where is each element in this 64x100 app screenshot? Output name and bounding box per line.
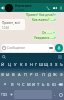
staticText: М xyxy=(27,82,31,87)
button[interactable]: Привет! Как дела? xyxy=(25,12,56,17)
staticText: в сети xyxy=(15,8,24,12)
staticText: А xyxy=(18,72,21,77)
button[interactable]: У xyxy=(12,60,18,69)
staticText: Э xyxy=(60,72,63,77)
staticText: Б xyxy=(47,82,50,87)
button[interactable]: Emoji xyxy=(57,90,64,99)
staticText: Ф xyxy=(1,72,5,77)
staticText: Привет, всё супер! xyxy=(2,21,24,25)
staticText: Д xyxy=(48,72,51,77)
button[interactable]: Увидимся xyxy=(33,35,56,40)
staticText: Как жизнь? xyxy=(32,18,50,22)
button[interactable]: Shift xyxy=(0,79,9,89)
staticText: Е xyxy=(25,62,28,67)
button[interactable]: Н xyxy=(29,60,34,69)
staticText: Ю xyxy=(52,82,56,87)
button[interactable]: Ш xyxy=(39,60,44,69)
staticText: Ь xyxy=(42,82,45,87)
button[interactable]: Б xyxy=(46,79,51,89)
button[interactable]: More options xyxy=(58,3,64,12)
staticText: Г xyxy=(35,62,38,67)
staticText: И xyxy=(32,82,36,87)
button[interactable]: Ц xyxy=(6,60,12,69)
staticText: Ок xyxy=(42,31,47,35)
button[interactable]: Send voice message xyxy=(55,44,63,52)
staticText: 12:0 xyxy=(47,31,52,34)
button[interactable]: Ч xyxy=(15,79,21,89)
staticText: Контакт xyxy=(15,3,32,8)
staticText: Щ xyxy=(44,62,49,67)
button[interactable]: Э xyxy=(58,69,64,79)
button[interactable]: Ъ xyxy=(59,60,64,69)
button[interactable]: Contact photo xyxy=(5,4,13,12)
button[interactable]: Keyboard settings xyxy=(58,55,62,59)
button[interactable]: М xyxy=(26,79,31,89)
button[interactable]: Л xyxy=(40,69,46,79)
button[interactable]: Back xyxy=(0,3,5,12)
button[interactable]: Ю xyxy=(51,79,56,89)
button[interactable]: А xyxy=(16,69,22,79)
staticText: Ъ xyxy=(60,62,63,67)
staticText: ?123 xyxy=(1,93,8,97)
staticText: Привет! Как дела? xyxy=(26,13,54,17)
staticText: 12:0 xyxy=(54,13,55,16)
staticText: Ц xyxy=(8,62,11,67)
button[interactable]: Сообщение xyxy=(1,44,54,52)
button[interactable]: Call xyxy=(44,3,51,12)
staticText: Я xyxy=(11,82,14,87)
button[interactable]: Т xyxy=(36,79,41,89)
staticText: Ш xyxy=(39,62,44,67)
button[interactable]: Р xyxy=(28,69,34,79)
button[interactable]: С xyxy=(21,79,26,89)
button[interactable]: ?123 xyxy=(0,90,9,99)
staticText: Ч xyxy=(17,82,20,87)
button[interactable]: Е xyxy=(24,60,29,69)
button[interactable]: З xyxy=(49,60,54,69)
staticText: Сообщение xyxy=(7,46,26,50)
button[interactable]: Ок xyxy=(41,30,56,35)
button[interactable]: Comma xyxy=(9,90,14,99)
button[interactable]: Ь xyxy=(41,79,46,89)
staticText: У xyxy=(14,62,17,67)
staticText: Х xyxy=(55,62,58,67)
staticText: Т xyxy=(37,82,40,87)
button[interactable]: Г xyxy=(34,60,39,69)
staticText: Ы xyxy=(6,72,10,77)
button[interactable]: И xyxy=(31,79,36,89)
staticText: Ж xyxy=(53,72,57,77)
staticText: О xyxy=(35,72,39,77)
button[interactable]: Как жизнь? xyxy=(31,17,56,22)
button[interactable]: Ы xyxy=(5,69,10,79)
button[interactable]: Video call xyxy=(51,3,58,12)
button[interactable]: О xyxy=(34,69,40,79)
staticText: Н xyxy=(30,62,33,67)
button[interactable]: Ж xyxy=(52,69,58,79)
button[interactable]: Backspace xyxy=(56,79,64,89)
staticText: Л xyxy=(42,72,45,77)
button[interactable]: Ф xyxy=(0,69,5,79)
staticText: Р xyxy=(30,72,33,77)
button[interactable]: Привет, всё супер! xyxy=(0,19,25,30)
staticText: . xyxy=(54,92,56,97)
button[interactable]: Search xyxy=(2,55,6,59)
staticText: З xyxy=(50,62,53,67)
staticText: Й xyxy=(1,62,5,67)
staticText: К xyxy=(20,62,23,67)
staticText: В xyxy=(12,72,15,77)
button[interactable]: Я xyxy=(9,79,15,89)
button[interactable]: Й xyxy=(0,60,6,69)
button[interactable]: Д xyxy=(46,69,52,79)
button[interactable]: В xyxy=(10,69,16,79)
staticText: Увидимся xyxy=(34,36,50,40)
staticText: 12:0 xyxy=(50,18,55,21)
button[interactable]: К xyxy=(18,60,24,69)
button[interactable]: Х xyxy=(54,60,59,69)
button[interactable]: Period xyxy=(52,90,57,99)
staticText: 12:04 xyxy=(2,26,9,30)
button[interactable]: П xyxy=(22,69,28,79)
staticText: 12:0 xyxy=(50,36,55,39)
staticText: С xyxy=(22,82,25,87)
button[interactable]: Щ xyxy=(44,60,49,69)
staticText: П xyxy=(24,72,27,77)
